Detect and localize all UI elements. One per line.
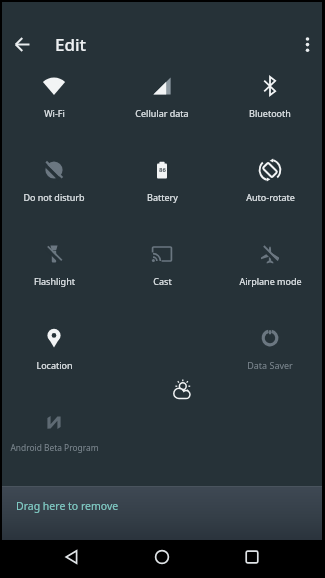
button[interactable]: Cast	[108, 228, 216, 288]
button[interactable]	[2, 24, 322, 65]
staticText: Data Saver	[247, 359, 293, 371]
staticText: Location	[36, 359, 73, 371]
staticText: Battery	[147, 191, 178, 203]
button[interactable]: Android Beta Program	[0, 394, 108, 454]
button[interactable]: Data Saver	[216, 312, 324, 372]
staticText: Bluetooth	[249, 107, 291, 119]
staticText: Edit	[55, 33, 87, 56]
staticText: Wi-Fi	[44, 107, 65, 119]
staticText: Airplane mode	[239, 275, 302, 287]
staticText: Cast	[153, 275, 172, 287]
button[interactable]: Battery	[108, 144, 216, 204]
button[interactable]	[244, 549, 260, 565]
staticText: Cellular data	[135, 107, 189, 119]
button[interactable]	[64, 549, 80, 565]
button[interactable]: Bluetooth	[216, 60, 324, 120]
staticText: Drag here to remove	[16, 499, 119, 513]
button[interactable]: Wi-Fi	[0, 60, 108, 120]
button[interactable]: Cellular data	[108, 60, 216, 120]
button[interactable]: Drag here to remove	[2, 486, 322, 540]
button[interactable]	[300, 36, 315, 51]
button[interactable]: Do not disturb	[0, 144, 108, 204]
staticText: 86	[159, 166, 166, 174]
button[interactable]: Auto-rotate	[216, 144, 324, 204]
button[interactable]	[14, 36, 31, 53]
button[interactable]: Location	[0, 312, 108, 372]
staticText: Flashlight	[34, 275, 75, 287]
staticText: Do not disturb	[23, 191, 85, 203]
button[interactable]	[154, 549, 170, 565]
staticText: Auto-rotate	[246, 191, 295, 203]
button[interactable]: Airplane mode	[216, 228, 324, 288]
staticText: Android Beta Program	[10, 442, 99, 453]
button[interactable]: Flashlight	[0, 228, 108, 288]
